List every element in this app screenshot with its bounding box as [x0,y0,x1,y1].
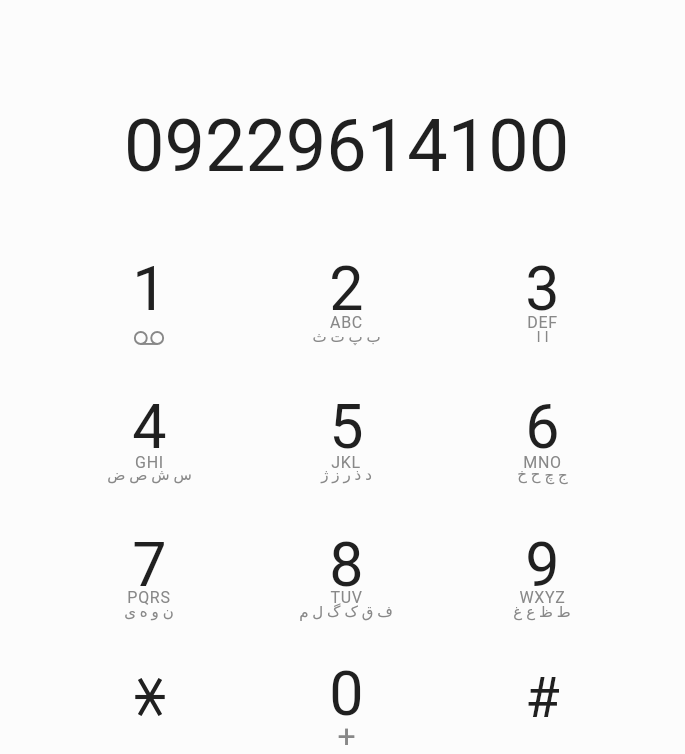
staticText: ا ا [536,326,549,346]
staticText: DEF [527,313,558,332]
staticText: 09229614100 [124,104,570,188]
staticText: ج چ ح خ [517,464,568,484]
staticText: 8 [329,529,364,600]
staticText: JKL [331,453,361,472]
button[interactable]: Dial three [444,237,640,375]
staticText: 2 [329,253,364,324]
staticText: ف ق ک گ ل م [299,601,393,621]
staticText: ABC [330,313,363,332]
button[interactable]: Dial star [51,651,247,754]
button[interactable]: Dial eight [248,513,444,651]
staticText: 4 [132,391,167,462]
staticText: 7 [132,529,167,600]
staticText: 9 [525,529,560,600]
staticText: + [337,717,356,754]
staticText: ن و ه ی [124,601,174,621]
staticText: 6 [525,391,560,462]
staticText: PQRS [127,588,171,607]
staticText: # [525,665,560,731]
button[interactable]: Dial two [248,237,444,375]
button[interactable]: Entered number 09229614100 [4,104,685,188]
staticText: ط ظ ع غ [513,601,571,621]
staticText: MNO [523,453,562,472]
button[interactable]: Dial zero, long press for plus [248,651,444,754]
staticText: TUV [330,588,363,607]
staticText: WXYZ [519,588,566,607]
staticText: GHI [135,453,164,472]
button[interactable]: Dial pound [444,651,640,754]
staticText: 5 [329,391,364,462]
staticText: 3 [525,253,560,324]
button[interactable]: Dial seven [51,513,247,651]
staticText: 0 [329,658,364,729]
button[interactable]: Dial five [248,375,444,513]
button[interactable]: Dial six [444,375,640,513]
button[interactable]: Dial nine [444,513,640,651]
button[interactable]: Dial four [51,375,247,513]
button[interactable]: Dial one [51,237,247,375]
staticText: س ش ص ض [107,464,192,484]
staticText: 1 [132,253,167,324]
staticText: ب پ ت ث [312,326,381,346]
staticText: د ذ ر ز ژ [321,464,372,484]
